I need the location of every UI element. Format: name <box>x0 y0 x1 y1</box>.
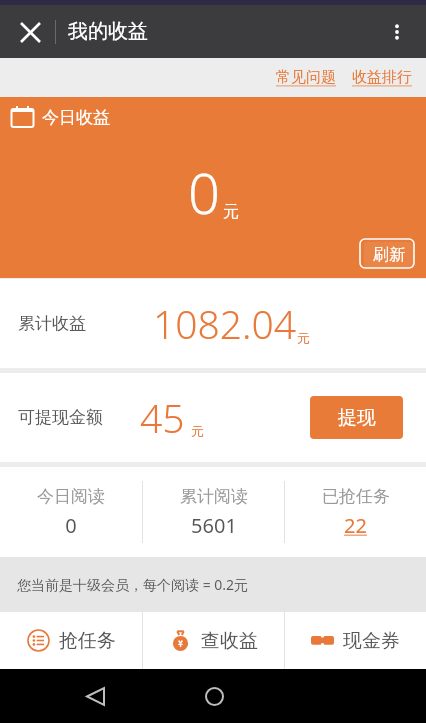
button[interactable]: 现金券 <box>285 612 426 669</box>
staticText: 0 <box>65 512 77 539</box>
button[interactable]: 已抢任务 <box>285 467 426 557</box>
staticText: 您当前是十级会员，每个阅读 = 0.2元 <box>17 575 249 594</box>
button[interactable]: Back <box>72 673 118 719</box>
staticText: 我的收益 <box>68 19 148 44</box>
staticText: 5601 <box>191 512 237 539</box>
staticText: 累计收益 <box>18 313 86 334</box>
button[interactable]: 查收益 <box>143 612 284 669</box>
staticText: 现金券 <box>343 629 400 653</box>
staticText: 元 <box>223 202 239 222</box>
staticText: 收益排行 <box>352 68 412 87</box>
staticText: 1082.04 <box>153 297 297 350</box>
staticText: 0 <box>188 154 220 230</box>
button[interactable]: 收益排行 <box>348 64 416 91</box>
button[interactable]: Close <box>8 10 52 54</box>
button[interactable]: 刷新 <box>364 242 414 268</box>
button[interactable]: 常见问题 <box>272 64 340 91</box>
staticText: 45 <box>140 391 185 444</box>
staticText: 已抢任务 <box>322 486 390 507</box>
staticText: 查收益 <box>201 629 258 653</box>
button[interactable]: 抢任务 <box>0 612 142 669</box>
staticText: 常见问题 <box>276 68 336 87</box>
staticText: 今日阅读 <box>37 486 105 507</box>
staticText: 22 <box>344 512 367 539</box>
staticText: 累计阅读 <box>180 486 248 507</box>
button[interactable]: More options <box>374 9 420 55</box>
button[interactable]: Home <box>191 673 237 719</box>
staticText: 提现 <box>338 406 376 430</box>
staticText: 抢任务 <box>59 629 116 653</box>
button[interactable]: 今日阅读 <box>0 467 142 557</box>
button[interactable]: 提现 <box>310 396 403 439</box>
button[interactable]: 累计阅读 <box>143 467 284 557</box>
staticText: 元 <box>297 330 310 346</box>
staticText: 刷新 <box>373 245 405 265</box>
staticText: 元 <box>191 423 204 439</box>
staticText: 今日收益 <box>42 107 110 128</box>
staticText: 可提现金额 <box>18 407 103 428</box>
